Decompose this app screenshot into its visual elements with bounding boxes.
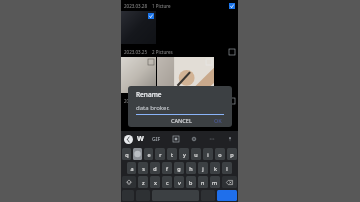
button[interactable]: y <box>179 148 189 160</box>
staticText: n <box>201 179 205 186</box>
button[interactable]: Select all <box>229 3 235 9</box>
staticText: h <box>189 165 193 172</box>
staticText: m <box>212 179 218 186</box>
staticText: b <box>189 179 193 186</box>
staticText: u <box>194 151 198 158</box>
staticText: y <box>183 151 186 158</box>
button[interactable]: Back <box>124 135 133 144</box>
staticText: Rename <box>136 90 162 99</box>
staticText: j <box>202 165 204 172</box>
button[interactable]: e <box>144 148 153 160</box>
staticText: p <box>230 151 234 158</box>
staticText: q <box>125 151 129 158</box>
button[interactable]: Backspace <box>222 176 237 188</box>
button[interactable]: Settings <box>189 134 199 144</box>
staticText: 2023.03.25 <box>124 49 148 55</box>
button[interactable]: p <box>227 148 237 160</box>
button[interactable]: 2023.03.28 <box>121 0 238 11</box>
staticText: e <box>147 151 151 158</box>
staticText: t <box>171 151 173 158</box>
button[interactable]: l <box>222 162 232 174</box>
button[interactable]: j <box>198 162 208 174</box>
staticText: 2023.03.28 <box>124 3 148 9</box>
staticText: i <box>207 151 209 158</box>
button[interactable]: c <box>162 176 172 188</box>
button[interactable]: Voice input <box>225 134 235 144</box>
button[interactable] <box>157 57 214 93</box>
button[interactable]: o <box>215 148 225 160</box>
button[interactable]: 2023.03.25 <box>121 46 238 57</box>
staticText: 2023.03.28 <box>124 98 148 104</box>
button[interactable]: a <box>127 162 136 174</box>
button[interactable]: r <box>155 148 165 160</box>
button[interactable]: m <box>210 176 220 188</box>
staticText: r <box>159 151 162 158</box>
button[interactable]: OK <box>208 115 228 125</box>
staticText: s <box>142 165 145 172</box>
staticText: d <box>153 165 157 172</box>
button[interactable]: Select all <box>229 49 235 55</box>
button[interactable]: Select all <box>229 98 235 104</box>
staticText: l <box>226 165 228 172</box>
button[interactable]: v <box>174 176 184 188</box>
staticText: data broker. <box>136 104 170 112</box>
staticText: OK <box>214 117 222 123</box>
staticText: CANCEL <box>171 117 192 123</box>
button[interactable]: Shift <box>122 176 136 188</box>
button[interactable]: z <box>138 176 148 188</box>
button[interactable] <box>121 11 156 44</box>
button[interactable]: Clipboard <box>135 134 145 144</box>
staticText: W <box>137 134 144 144</box>
staticText: x <box>154 179 157 186</box>
button[interactable] <box>121 57 156 93</box>
staticText: v <box>178 179 181 186</box>
staticText: a <box>130 165 134 172</box>
staticText: 2 Pictures <box>152 49 173 55</box>
button[interactable]: q <box>122 148 131 160</box>
staticText: k <box>214 165 217 172</box>
button[interactable]: h <box>186 162 196 174</box>
button[interactable]: b <box>186 176 196 188</box>
button[interactable]: t <box>167 148 177 160</box>
staticText: o <box>218 151 222 158</box>
button[interactable]: s <box>138 162 148 174</box>
button[interactable]: f <box>162 162 172 174</box>
button[interactable]: i <box>203 148 213 160</box>
staticText: z <box>142 179 145 186</box>
button[interactable]: n <box>198 176 208 188</box>
button[interactable]: 2023.03.28 <box>121 95 238 106</box>
button[interactable]: GIF <box>150 134 163 145</box>
button[interactable]: g <box>174 162 184 174</box>
staticText: GIF <box>152 136 161 143</box>
button[interactable]: Enter <box>217 190 237 201</box>
button[interactable]: u <box>191 148 201 160</box>
button[interactable]: More options <box>207 134 217 144</box>
staticText: 1 Picture <box>152 3 171 9</box>
button[interactable] <box>133 148 142 160</box>
button[interactable]: x <box>150 176 160 188</box>
staticText: c <box>166 179 169 186</box>
button[interactable]: k <box>210 162 220 174</box>
staticText: g <box>177 165 181 172</box>
staticText: f <box>166 165 168 172</box>
button[interactable]: CANCEL <box>165 115 198 125</box>
button[interactable]: Stickers <box>171 134 181 144</box>
button[interactable]: d <box>150 162 160 174</box>
